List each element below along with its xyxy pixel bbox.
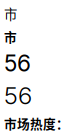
staticText: 市 <box>4 4 17 23</box>
staticText: 56 <box>4 81 32 110</box>
staticText: 市场热度： <box>4 114 69 132</box>
staticText: 市 <box>4 27 17 46</box>
staticText: 56 <box>4 50 31 77</box>
